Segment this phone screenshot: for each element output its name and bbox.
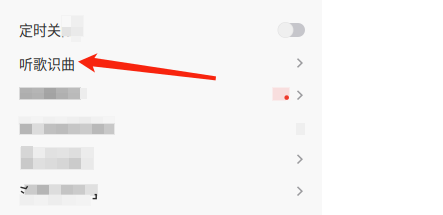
staticText: 听歌识曲 xyxy=(19,53,75,73)
button[interactable]: 定时关闭 xyxy=(0,0,322,44)
button[interactable]: 听歌识曲 xyxy=(0,52,322,84)
button[interactable] xyxy=(0,182,322,212)
button[interactable] xyxy=(0,116,322,148)
button[interactable] xyxy=(0,148,322,178)
button[interactable] xyxy=(0,84,322,114)
staticText: 定时关闭 xyxy=(19,19,75,39)
